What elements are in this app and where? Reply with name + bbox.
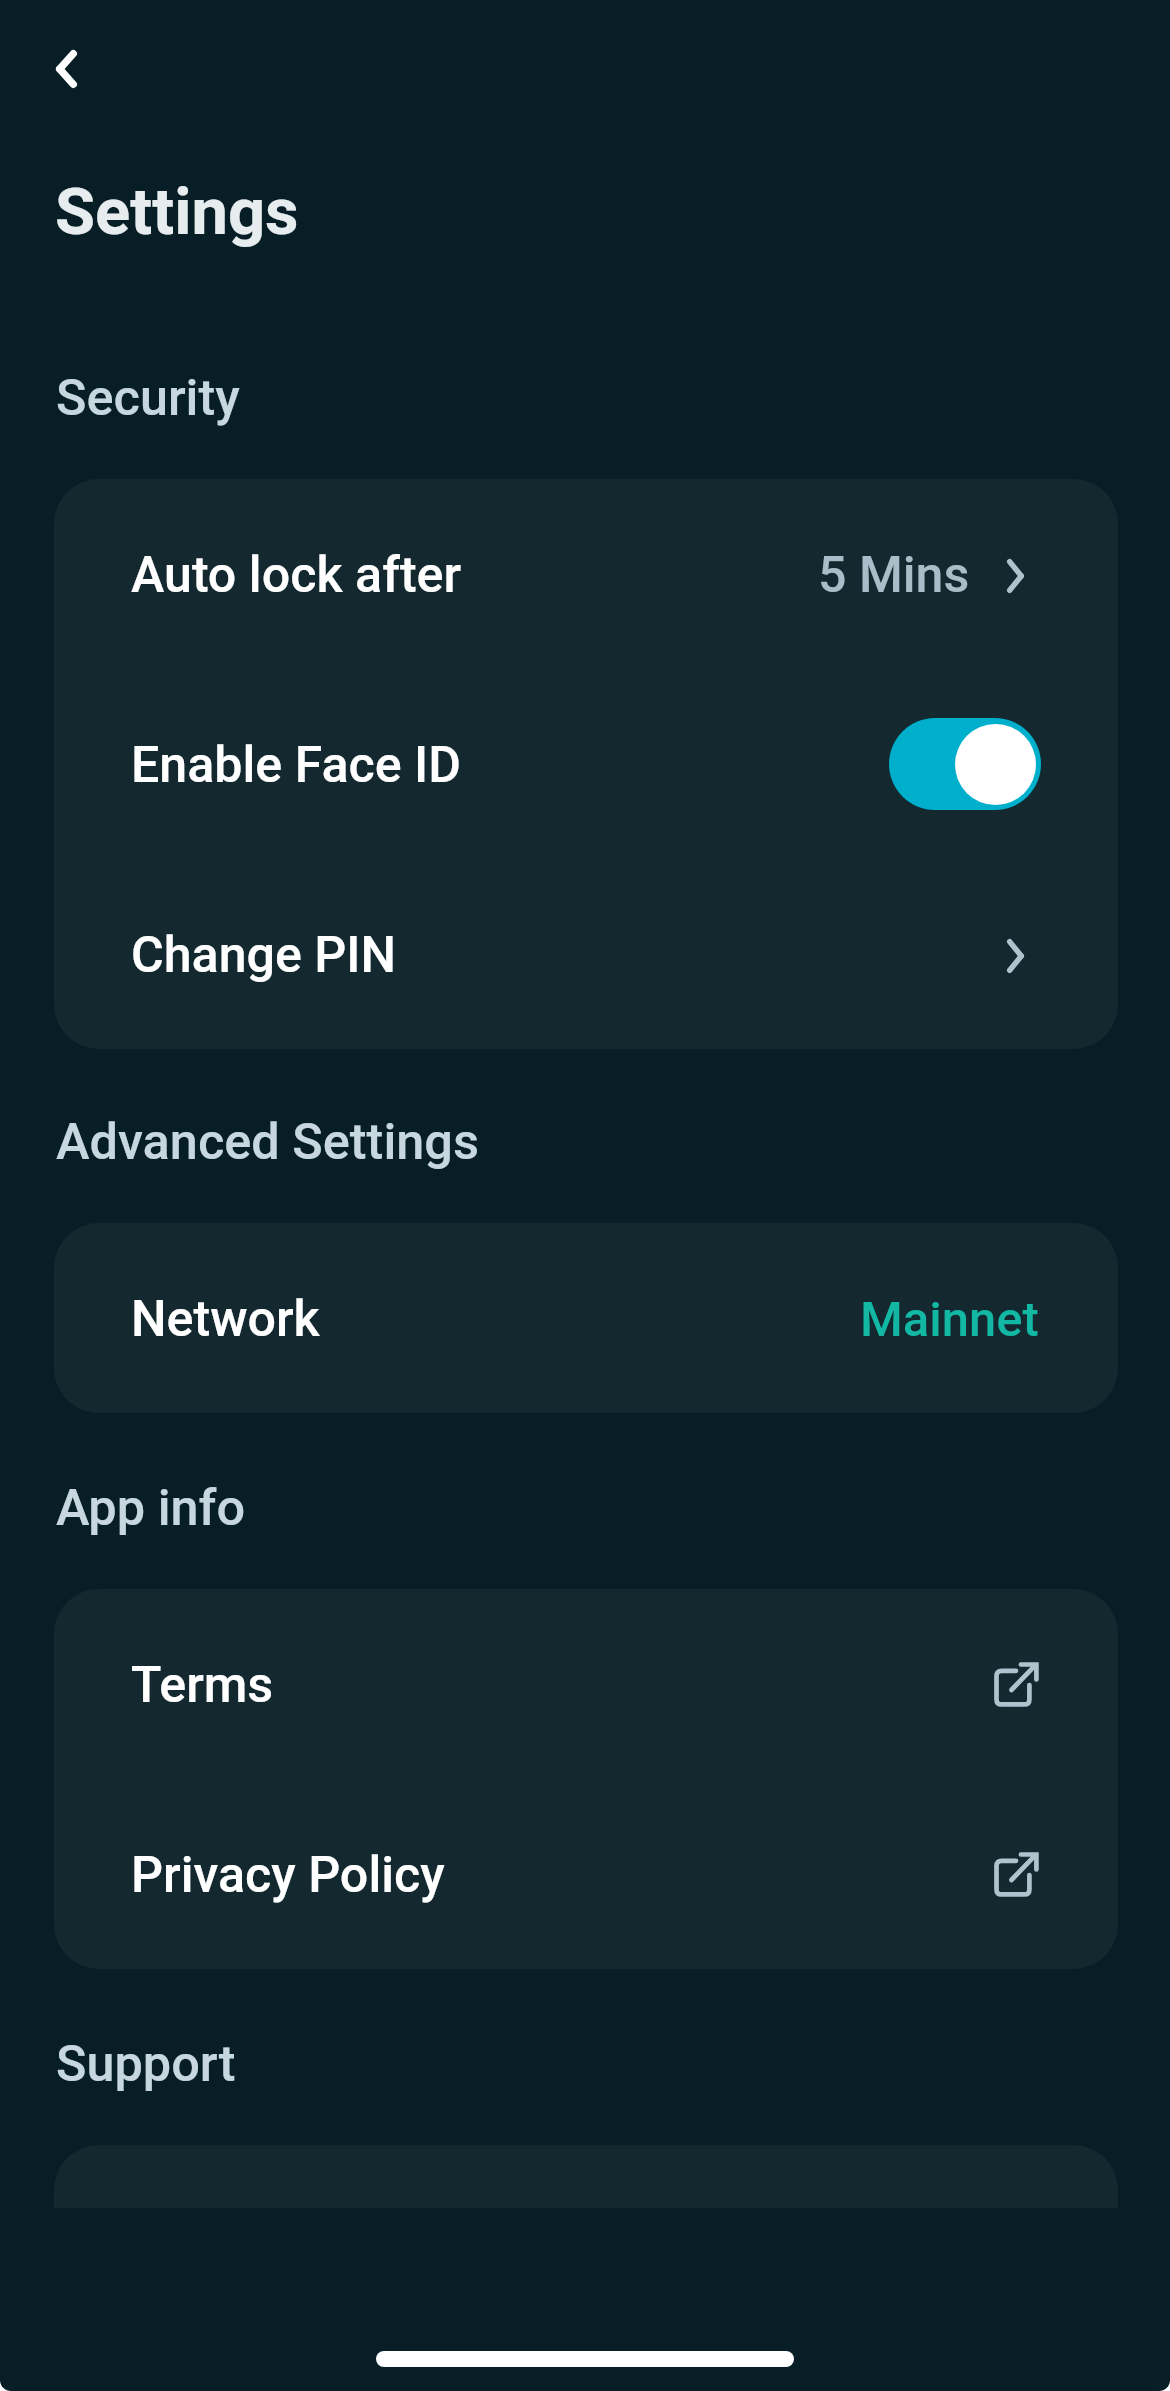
staticText: Advanced Settings <box>56 1111 479 1171</box>
staticText: Enable Face ID <box>131 734 461 794</box>
staticText: Network <box>131 1288 320 1348</box>
staticText: Terms <box>131 1654 274 1714</box>
staticText: Privacy Policy <box>131 1844 445 1904</box>
staticText: Support <box>56 2033 236 2093</box>
staticText: Security <box>56 367 240 427</box>
button[interactable]: Enable Face ID <box>889 718 1041 810</box>
staticText: Change PIN <box>131 924 397 984</box>
button[interactable]: Privacy Policy <box>54 1779 1118 1969</box>
staticText: App info <box>56 1477 246 1537</box>
button[interactable]: Auto lock after <box>54 479 1118 669</box>
staticText: 5 Mins <box>818 544 970 604</box>
staticText: Mainnet <box>860 1288 1039 1348</box>
button[interactable]: Change PIN <box>54 859 1118 1049</box>
button[interactable]: Network <box>54 1223 1118 1413</box>
button[interactable]: Back <box>0 3 132 135</box>
button[interactable]: Terms <box>54 1589 1118 1779</box>
staticText: Settings <box>55 177 299 249</box>
staticText: Auto lock after <box>131 544 462 604</box>
button[interactable]: Enable Face ID <box>54 669 1118 859</box>
